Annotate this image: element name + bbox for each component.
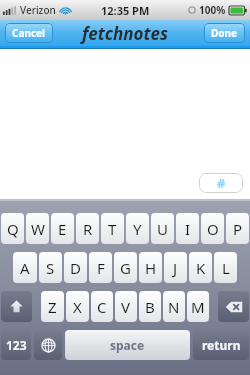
button[interactable]: F bbox=[89, 252, 112, 283]
staticText: V bbox=[121, 297, 131, 317]
staticText: F bbox=[97, 258, 105, 278]
staticText: W bbox=[31, 219, 45, 239]
button[interactable]: V bbox=[115, 291, 137, 322]
button[interactable]: Y bbox=[126, 213, 149, 244]
button[interactable]: Add tag bbox=[199, 173, 243, 193]
button[interactable]: G bbox=[114, 252, 137, 283]
staticText: E bbox=[58, 219, 67, 239]
staticText: J bbox=[173, 258, 178, 278]
staticText: Cancel bbox=[12, 26, 46, 40]
staticText: R bbox=[83, 219, 93, 239]
button[interactable]: B bbox=[139, 291, 161, 322]
staticText: G bbox=[120, 258, 131, 278]
button[interactable]: Shift bbox=[1, 291, 32, 322]
button[interactable]: 123 bbox=[1, 330, 31, 360]
staticText: X bbox=[73, 297, 82, 317]
button[interactable]: M bbox=[187, 291, 209, 322]
button[interactable]: R bbox=[76, 213, 99, 244]
staticText: 100% bbox=[199, 3, 226, 17]
button[interactable]: I bbox=[176, 213, 199, 244]
button[interactable]: N bbox=[163, 291, 185, 322]
button[interactable]: W bbox=[26, 213, 49, 244]
staticText: Q bbox=[7, 219, 19, 239]
staticText: O bbox=[207, 219, 219, 239]
staticText: D bbox=[70, 258, 81, 278]
button[interactable]: return bbox=[193, 330, 249, 360]
button[interactable]: Switch keyboard bbox=[34, 330, 62, 360]
button[interactable]: O bbox=[201, 213, 224, 244]
button[interactable]: S bbox=[39, 252, 62, 283]
staticText: I bbox=[185, 219, 191, 239]
button[interactable]: J bbox=[164, 252, 187, 283]
staticText: space bbox=[110, 337, 145, 353]
button[interactable]: L bbox=[214, 252, 237, 283]
staticText: B bbox=[145, 297, 155, 317]
button[interactable]: A bbox=[13, 252, 37, 283]
staticText: T bbox=[108, 219, 117, 239]
staticText: return bbox=[202, 337, 241, 353]
staticText: L bbox=[222, 258, 230, 278]
button[interactable]: P bbox=[226, 213, 249, 244]
staticText: # bbox=[217, 174, 226, 192]
button[interactable]: D bbox=[64, 252, 87, 283]
staticText: Y bbox=[133, 219, 142, 239]
button[interactable]: T bbox=[101, 213, 124, 244]
staticText: 123 bbox=[6, 337, 27, 353]
staticText: 12:35 PM bbox=[101, 3, 150, 18]
staticText: N bbox=[168, 297, 180, 317]
staticText: fetchnotes bbox=[82, 22, 169, 45]
staticText: C bbox=[97, 297, 107, 317]
button[interactable]: space bbox=[65, 330, 190, 360]
button[interactable]: X bbox=[66, 291, 89, 322]
staticText: S bbox=[46, 258, 55, 278]
button[interactable]: Q bbox=[1, 213, 24, 244]
button[interactable]: Done bbox=[204, 23, 245, 43]
staticText: H bbox=[145, 258, 157, 278]
staticText: U bbox=[157, 219, 168, 239]
staticText: M bbox=[191, 297, 205, 317]
staticText: P bbox=[233, 219, 243, 239]
staticText: Z bbox=[48, 297, 57, 317]
button[interactable]: H bbox=[139, 252, 162, 283]
staticText: Verizon bbox=[20, 3, 56, 17]
staticText: K bbox=[196, 258, 206, 278]
button[interactable]: Cancel bbox=[5, 23, 53, 43]
button[interactable]: E bbox=[51, 213, 74, 244]
staticText: Done bbox=[211, 26, 238, 40]
button[interactable]: U bbox=[151, 213, 174, 244]
button[interactable]: Z bbox=[41, 291, 64, 322]
button[interactable]: Backspace bbox=[218, 291, 249, 322]
button[interactable]: C bbox=[91, 291, 113, 322]
staticText: A bbox=[20, 258, 30, 278]
button[interactable]: K bbox=[189, 252, 212, 283]
